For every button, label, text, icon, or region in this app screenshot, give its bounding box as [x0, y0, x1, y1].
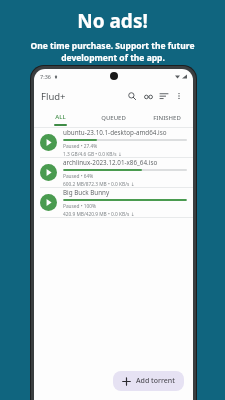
button[interactable]: Sort	[156, 88, 172, 104]
button[interactable]: Resume Big Buck Bunny	[40, 194, 57, 211]
button[interactable]: Resume ubuntu-23.10.1-desktop-amd64.iso	[34, 128, 193, 157]
button[interactable]: ALL	[34, 109, 87, 127]
button[interactable]: QUEUED	[87, 109, 140, 127]
staticText: ALL	[55, 113, 66, 121]
staticText: 420.9 MB/420.9 MB • 0.0 KB/s ↓	[63, 211, 135, 217]
staticText: ubuntu-23.10.1-desktop-amd64.iso	[63, 128, 167, 137]
button[interactable]: Filter	[140, 88, 156, 104]
staticText: Paused • 64%	[63, 173, 94, 180]
staticText: Add torrent	[136, 376, 175, 386]
staticText: QUEUED	[101, 114, 126, 122]
staticText: 1.3 GB/4.6 GB • 0.0 KB/s ↓	[63, 151, 122, 157]
staticText: Flud+	[41, 90, 66, 103]
staticText: No ads!	[77, 8, 148, 34]
button[interactable]: Add torrent	[113, 371, 184, 391]
button[interactable]: FINISHED	[140, 109, 193, 127]
staticText: FINISHED	[153, 114, 181, 122]
button[interactable]: Search	[124, 88, 140, 104]
button[interactable]: Resume Big Buck Bunny	[34, 188, 193, 217]
staticText: development of the app.	[61, 52, 165, 64]
staticText: Paused • 100%	[63, 203, 97, 210]
button[interactable]: Resume archlinux-2023.12.01-x86_64.iso	[40, 164, 57, 181]
button[interactable]: Resume ubuntu-23.10.1-desktop-amd64.iso	[40, 134, 57, 151]
button[interactable]: Resume archlinux-2023.12.01-x86_64.iso	[34, 158, 193, 187]
staticText: archlinux-2023.12.01-x86_64.iso	[63, 158, 158, 167]
staticText: Paused • 27.4%	[63, 143, 98, 150]
staticText: 600.2 MB/872.3 MB • 0.0 KB/s ↓	[63, 181, 135, 187]
staticText: 7:36	[40, 73, 51, 80]
button[interactable]: More options	[172, 89, 186, 103]
staticText: One time purchase. Support the future	[30, 40, 195, 52]
staticText: Big Buck Bunny	[63, 188, 110, 197]
